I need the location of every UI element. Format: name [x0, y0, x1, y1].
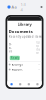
staticText: > [38, 68, 40, 71]
staticText: Recently updated items [9, 35, 42, 39]
staticText: > [38, 63, 40, 66]
staticText: Library [17, 22, 31, 27]
staticText: 1:34 [20, 2, 25, 12]
button[interactable]: Profile [33, 81, 42, 87]
staticText: Documents [9, 29, 33, 34]
staticText: Status [9, 42, 12, 53]
button[interactable]: More [40, 6, 42, 8]
button[interactable]: Account [7, 67, 42, 72]
button[interactable]: Search [16, 81, 24, 87]
button[interactable]: Settings [7, 62, 42, 67]
staticText: Account [12, 68, 23, 71]
staticText: Settings [12, 63, 23, 66]
button[interactable]: Saved [24, 81, 33, 87]
button[interactable]: Home [7, 81, 16, 87]
staticText: Aa [11, 4, 16, 10]
staticText: Up to date [36, 41, 40, 55]
staticText: Ready [11, 56, 19, 60]
